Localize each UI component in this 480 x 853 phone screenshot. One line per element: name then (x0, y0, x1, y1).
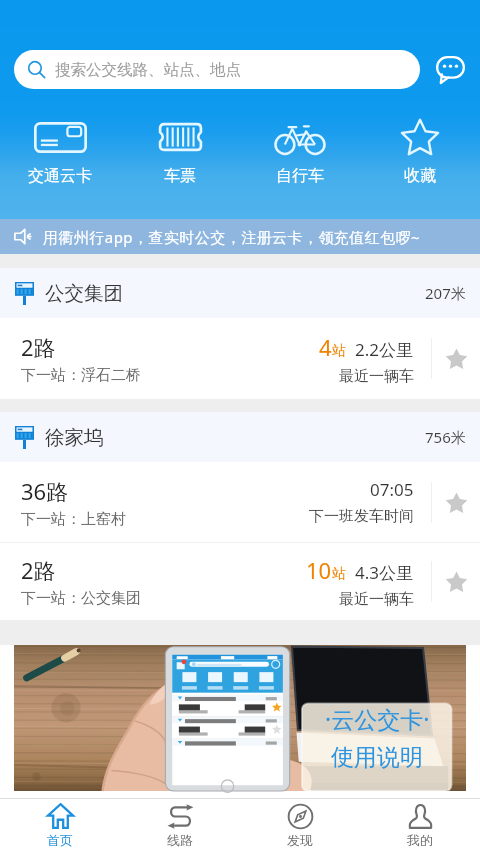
staticText: 最近一辆车 (339, 367, 414, 386)
button[interactable]: 搜索公交线路、站点、地点 (14, 50, 420, 89)
staticText: 收藏 (404, 166, 436, 186)
staticText: 首页 (47, 832, 73, 848)
staticText: 交通云卡 (28, 166, 92, 186)
staticText: 车票 (164, 166, 196, 186)
button[interactable]: Favorite (432, 462, 480, 542)
button[interactable]: 线路 (120, 798, 240, 853)
button[interactable]: Favorite (432, 543, 480, 620)
staticText: 10 (306, 555, 332, 585)
staticText: 下一站：公交集团 (21, 589, 141, 608)
staticText: 线路 (167, 832, 193, 848)
staticText: 4 (319, 332, 332, 362)
button[interactable]: 公交集团 (0, 268, 480, 318)
staticText: 下一站：浮石二桥 (21, 366, 141, 385)
button[interactable]: Favorite (432, 318, 480, 399)
staticText: 下一站：上窑村 (21, 510, 126, 529)
staticText: 用衢州行app，查实时公交，注册云卡，领充值红包啰~ (43, 227, 421, 247)
staticText: 4.3公里 (355, 561, 414, 584)
button[interactable]: 发现 (240, 798, 360, 853)
button[interactable]: 车票 (120, 118, 240, 186)
staticText: 07:05 (370, 478, 414, 501)
staticText: 36路 (21, 476, 69, 506)
staticText: 使用说明 (331, 743, 423, 772)
staticText: 下一班发车时间 (309, 507, 414, 526)
button[interactable]: 首页 (0, 798, 120, 853)
staticText: 最近一辆车 (339, 590, 414, 609)
button[interactable]: 我的 (360, 798, 480, 853)
staticText: 2路 (21, 555, 56, 585)
button[interactable]: Messages (428, 49, 472, 89)
button[interactable]: Advertisement (14, 645, 466, 791)
staticText: 发现 (287, 832, 313, 848)
staticText: 站 (332, 565, 346, 583)
staticText: 自行车 (276, 166, 324, 186)
staticText: 搜索公交线路、站点、地点 (55, 60, 241, 80)
button[interactable]: 收藏 (360, 118, 480, 186)
staticText: 756米 (425, 427, 466, 447)
staticText: 2路 (21, 332, 56, 362)
button[interactable]: 自行车 (240, 118, 360, 186)
staticText: 207米 (425, 283, 466, 303)
staticText: 徐家坞 (45, 425, 104, 450)
button[interactable]: 2路 (0, 543, 480, 620)
button[interactable]: 徐家坞 (0, 412, 480, 462)
staticText: 公交集团 (45, 281, 123, 306)
button[interactable]: 用衢州行app，查实时公交，注册云卡，领充值红包啰~ (0, 219, 480, 254)
staticText: 2.2公里 (355, 338, 414, 361)
button[interactable]: 2路 (0, 318, 480, 399)
staticText: 站 (332, 342, 346, 360)
button[interactable]: 36路 (0, 462, 480, 542)
staticText: ·云公交卡· (325, 703, 430, 734)
staticText: 我的 (407, 832, 433, 848)
button[interactable]: 交通云卡 (0, 118, 120, 186)
